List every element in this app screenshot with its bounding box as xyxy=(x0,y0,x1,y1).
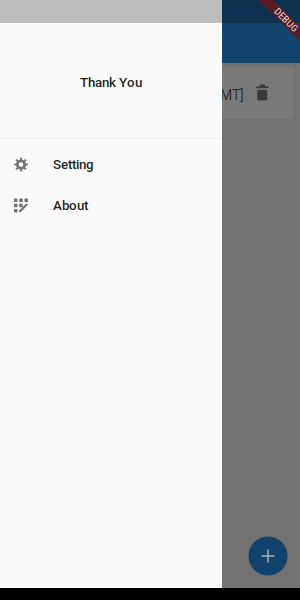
button[interactable]: Setting xyxy=(0,144,222,185)
staticText: 08:00 GMT] xyxy=(172,87,244,103)
staticText: Thank You xyxy=(80,75,142,90)
staticText: DEBUG xyxy=(271,14,300,25)
staticText: Setting xyxy=(53,157,94,172)
button[interactable]: About xyxy=(0,185,222,226)
staticText: About xyxy=(53,198,88,213)
